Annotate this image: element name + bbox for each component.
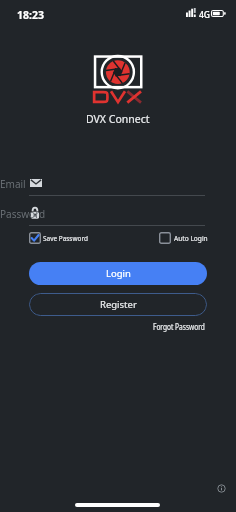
button[interactable]: Auto Login (159, 232, 213, 244)
staticText: 18:23 (17, 8, 44, 22)
button[interactable]: Register (29, 293, 207, 316)
staticText: Login (106, 267, 131, 280)
button[interactable]: Login (29, 262, 207, 285)
button[interactable]: Forgot Password (153, 321, 217, 332)
button[interactable]: Save Password (29, 232, 96, 244)
staticText: Register (100, 298, 137, 311)
staticText: Password (0, 207, 46, 221)
button[interactable]: Info (211, 478, 231, 498)
staticText: 4G (199, 9, 211, 21)
staticText: Email (0, 177, 26, 191)
staticText: Forgot Password (153, 321, 205, 332)
button[interactable]: Email (0, 177, 236, 191)
staticText: DVX Connect (86, 112, 150, 126)
staticText: Auto Login (174, 233, 208, 243)
staticText: Save Password (43, 233, 89, 243)
button[interactable]: Password (0, 207, 236, 221)
